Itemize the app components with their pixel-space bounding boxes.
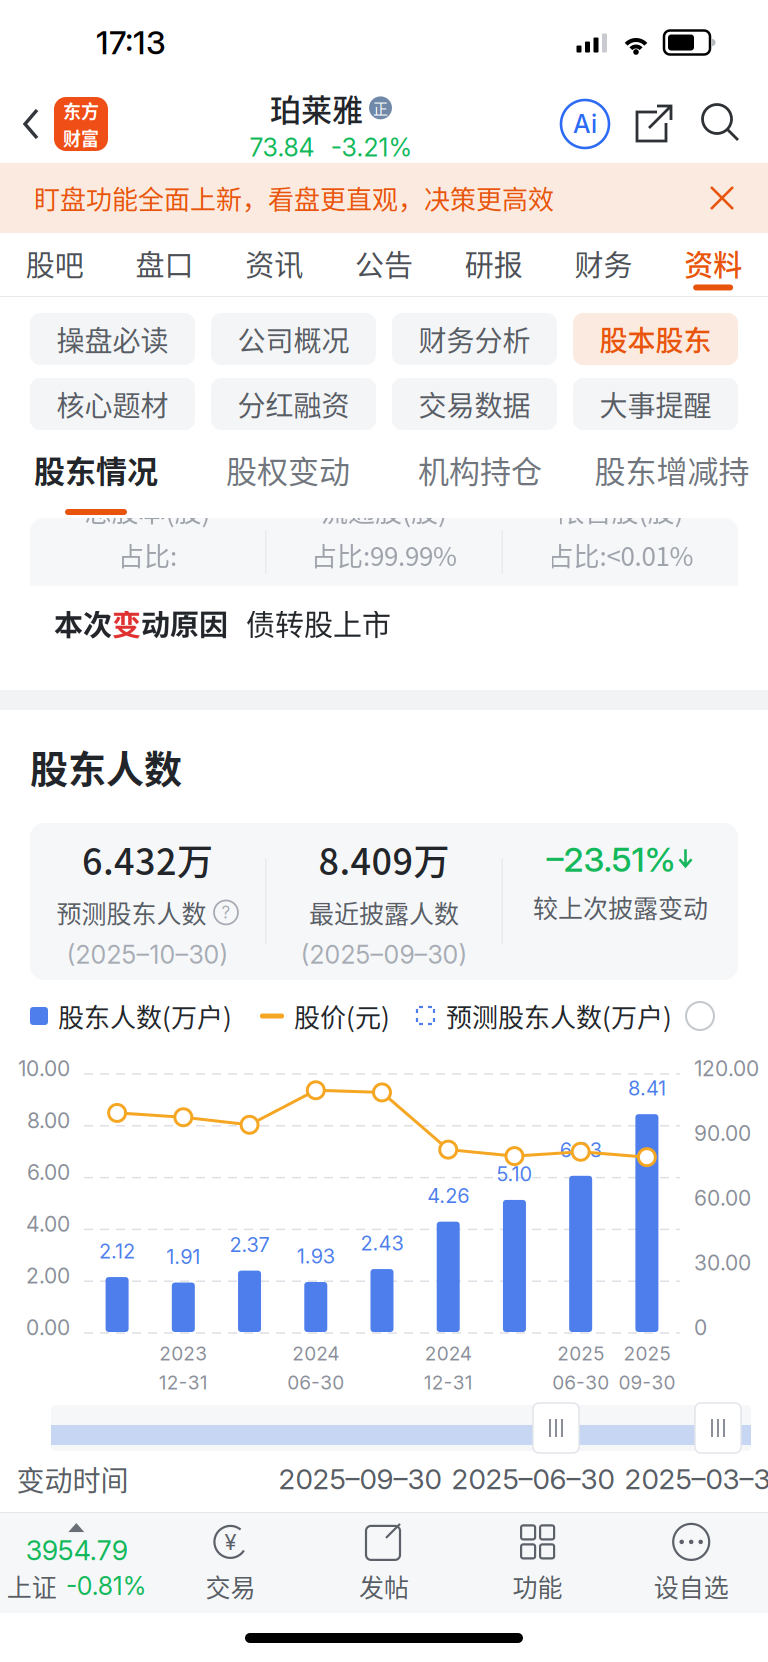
staticText: 预测股东人数	[56, 894, 206, 930]
staticText: 2.43	[360, 1231, 403, 1255]
button[interactable]: 返回	[0, 85, 54, 163]
button[interactable]: 股东增减持	[576, 430, 768, 518]
staticText: Ai	[573, 109, 597, 139]
staticText: 6.03	[560, 1138, 602, 1162]
staticText: 30.00	[694, 1250, 751, 1276]
staticText: 5.10	[496, 1162, 532, 1186]
staticText: 机构持仓	[418, 447, 542, 492]
staticText: –23.51%	[546, 839, 675, 880]
button[interactable]: 股权变动	[192, 430, 384, 518]
button[interactable]: 分红融资	[211, 378, 376, 430]
button[interactable]: AI 助手	[558, 97, 612, 151]
button[interactable]: 公告	[329, 233, 439, 296]
staticText: 变动时间	[16, 1459, 128, 1499]
staticText: 2025–03–31	[624, 1462, 768, 1496]
staticText: 1.91	[166, 1244, 200, 1269]
button[interactable]: 资讯	[219, 233, 329, 296]
staticText: 财富	[63, 124, 99, 151]
staticText: 8.41	[628, 1076, 666, 1100]
button[interactable]: 东方财富	[54, 97, 108, 151]
button[interactable]: 3954.79	[0, 1513, 154, 1613]
staticText: 0.00	[26, 1315, 70, 1340]
staticText: 分红融资	[237, 384, 349, 424]
staticText: 8.409万	[318, 833, 449, 885]
staticText: 股东情况	[34, 447, 158, 492]
staticText: 流通股(股)	[321, 491, 447, 530]
staticText: 限售股(股)	[557, 491, 683, 530]
staticText: 4.26	[427, 1184, 469, 1208]
staticText: 3954.79	[26, 1534, 128, 1567]
staticText: 股权变动	[226, 447, 350, 492]
staticText: 盯盘功能全面上新，看盘更直观，决策更高效	[34, 179, 554, 217]
staticText: 73.84	[249, 132, 314, 162]
staticText: 财务	[574, 242, 632, 284]
button[interactable]: 设自选	[614, 1513, 768, 1613]
button[interactable]: 股本股东	[573, 313, 738, 365]
button[interactable]: 发帖	[307, 1513, 461, 1613]
staticText: 总股本(股)	[84, 491, 210, 530]
button[interactable]: 机构持仓	[384, 430, 576, 518]
staticText: 12-31	[159, 1371, 208, 1394]
staticText: 东方	[63, 97, 99, 123]
staticText: 06-30	[287, 1371, 344, 1394]
staticText: 功能	[513, 1568, 563, 1604]
staticText: 上证	[7, 1568, 57, 1604]
staticText: 设自选	[654, 1568, 729, 1604]
staticText: 12-31	[424, 1371, 473, 1394]
staticText: 2.37	[230, 1233, 270, 1257]
button[interactable]: 股吧	[0, 233, 110, 296]
staticText: 股东人数	[30, 739, 182, 794]
staticText: 股东增减持	[594, 447, 749, 492]
staticText: 较上次披露变动	[533, 889, 708, 925]
staticText: 120.00	[694, 1056, 759, 1081]
button[interactable]: 资料	[658, 233, 768, 296]
staticText: 操盘必读	[56, 319, 168, 359]
staticText: 1.93	[297, 1244, 335, 1268]
button[interactable]: 财务分析	[392, 313, 557, 365]
staticText: 06-30	[552, 1371, 609, 1394]
staticText: 本次	[54, 602, 112, 644]
staticText: 2025–06–30	[451, 1462, 614, 1496]
button[interactable]: 搜索	[696, 97, 746, 151]
staticText: 2024	[292, 1342, 339, 1365]
staticText: 60.00	[694, 1185, 751, 1211]
staticText: 研报	[465, 242, 523, 284]
button[interactable]: 盯盘功能全面上新，看盘更直观，决策更高效	[0, 163, 768, 233]
staticText: 6.432万	[82, 833, 213, 885]
staticText: 核心题材	[56, 384, 168, 424]
staticText: 预测股东人数(万户)	[446, 997, 672, 1035]
staticText: 股本股东	[599, 319, 711, 359]
staticText: ¥	[224, 1529, 236, 1555]
staticText: 2.00	[26, 1263, 70, 1289]
button[interactable]: 大事提醒	[573, 378, 738, 430]
staticText: ?	[221, 902, 230, 923]
staticText: 资料	[684, 242, 742, 284]
button[interactable]: 交易数据	[392, 378, 557, 430]
staticText: 最近披露人数	[309, 894, 459, 930]
button[interactable]: 分享	[630, 97, 680, 151]
button[interactable]: 股东情况	[0, 430, 192, 518]
button[interactable]: 操盘必读	[30, 313, 195, 365]
staticText: -3.21%	[330, 132, 412, 162]
button[interactable]: 盘口	[110, 233, 219, 296]
button[interactable]: ¥	[154, 1513, 307, 1613]
staticText: 交易数据	[418, 384, 530, 424]
staticText: 4.00	[26, 1211, 70, 1237]
staticText: 交易	[205, 1568, 255, 1604]
button[interactable]: 财务	[549, 233, 658, 296]
button[interactable]: 功能	[461, 1513, 614, 1613]
staticText: 2.12	[99, 1239, 135, 1263]
staticText: 债转股上市	[246, 602, 391, 644]
staticText: 正	[373, 97, 388, 119]
staticText: 6.00	[27, 1160, 70, 1185]
staticText: -0.81%	[66, 1571, 147, 1601]
staticText: 2024	[425, 1342, 472, 1365]
staticText: 2025–09–30	[278, 1462, 441, 1496]
button[interactable]: 核心题材	[30, 378, 195, 430]
button[interactable]: 研报	[439, 233, 549, 296]
staticText: 变	[112, 602, 141, 644]
button[interactable]: 公司概况	[211, 313, 376, 365]
staticText: 占比:99.99%	[311, 536, 457, 573]
staticText: (2025–09–30)	[300, 939, 467, 970]
